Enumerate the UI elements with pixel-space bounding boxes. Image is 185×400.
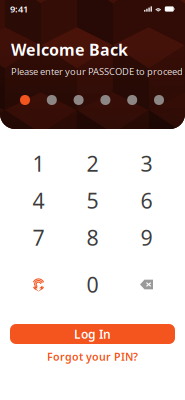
staticText: 6 — [140, 186, 152, 215]
staticText: Welcome Back — [11, 39, 128, 60]
button[interactable]: 9 — [119, 219, 173, 256]
button[interactable]: Unlock with fingerprint — [11, 266, 65, 303]
staticText: 8 — [86, 223, 98, 252]
staticText: 1 — [32, 149, 44, 178]
button[interactable]: 5 — [65, 182, 119, 219]
button[interactable]: Forgot your PIN? — [47, 351, 138, 362]
button[interactable]: 3 — [119, 145, 173, 182]
button[interactable]: 0 — [65, 266, 119, 303]
staticText: 0 — [86, 270, 98, 299]
button[interactable]: Delete — [119, 266, 173, 303]
button[interactable]: 8 — [65, 219, 119, 256]
staticText: 7 — [32, 223, 44, 252]
button[interactable]: 2 — [65, 145, 119, 182]
staticText: 9 — [140, 223, 152, 252]
staticText: 2 — [86, 149, 98, 178]
staticText: 5 — [86, 186, 98, 215]
staticText: 4 — [32, 186, 44, 215]
button[interactable]: 4 — [11, 182, 65, 219]
staticText: Log In — [74, 326, 111, 342]
button[interactable]: 7 — [11, 219, 65, 256]
staticText: Please enter your PASSCODE to proceed — [11, 65, 183, 78]
staticText: Forgot your PIN? — [47, 349, 138, 364]
staticText: 9:41 — [10, 3, 28, 15]
staticText: 3 — [140, 149, 152, 178]
button[interactable]: 1 — [11, 145, 65, 182]
button[interactable]: 6 — [119, 182, 173, 219]
button[interactable]: Log In — [10, 324, 175, 344]
